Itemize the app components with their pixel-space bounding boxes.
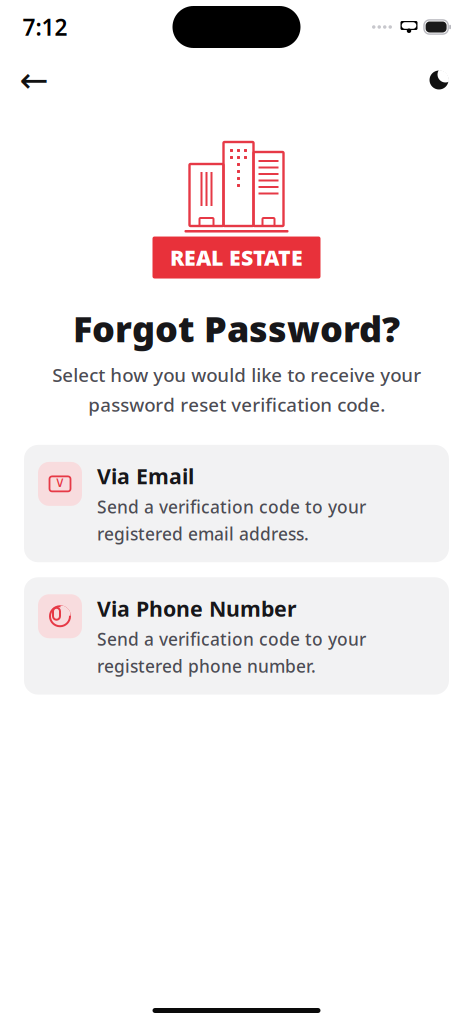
button[interactable]: Back <box>12 58 56 102</box>
staticText: REAL ESTATE <box>170 243 303 272</box>
button[interactable]: Via Email <box>24 445 449 562</box>
staticText: Forgot Password? <box>73 304 400 352</box>
staticText: ← <box>19 60 48 100</box>
button[interactable]: Toggle dark mode <box>417 58 461 102</box>
staticText: Send a verification code to your registe… <box>97 628 366 678</box>
staticText: 7:12 <box>22 12 67 42</box>
staticText: Via Phone Number <box>97 594 297 623</box>
button[interactable]: Via Phone Number <box>24 577 449 695</box>
staticText: ∨ <box>54 474 65 490</box>
staticText: Select how you would like to receive you… <box>52 362 421 417</box>
staticText: Send a verification code to your registe… <box>97 495 366 545</box>
staticText: Via Email <box>97 462 194 490</box>
